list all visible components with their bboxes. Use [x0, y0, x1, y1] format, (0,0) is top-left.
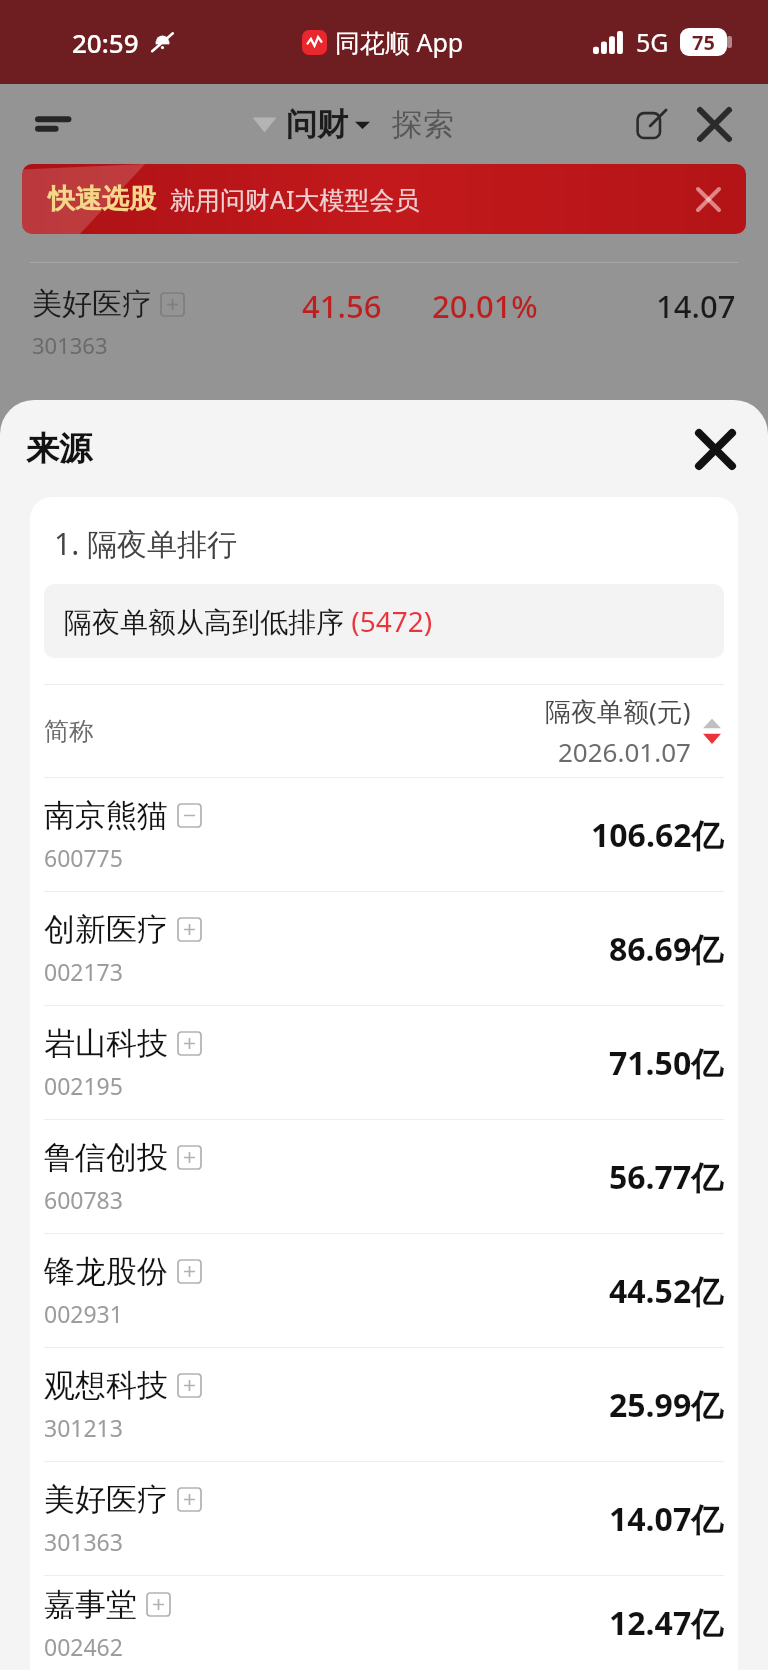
button[interactable]: Edit: [628, 100, 676, 148]
staticText: 同花顺 App: [335, 25, 464, 59]
button[interactable]: 隔夜单额从高到低排序 (5472): [44, 584, 724, 658]
staticText: 002931: [44, 1298, 123, 1329]
staticText: 南京熊猫: [44, 796, 168, 835]
staticText: 观想科技: [44, 1366, 168, 1405]
staticText: 1. 隔夜单排行: [54, 523, 237, 564]
button[interactable]: 探索: [392, 105, 454, 144]
staticText: 问财: [286, 105, 348, 144]
staticText: 25.99亿: [609, 1383, 724, 1427]
staticText: 美好医疗: [44, 1480, 168, 1519]
button[interactable]: 创新医疗: [30, 892, 738, 1005]
staticText: 5G: [636, 25, 669, 59]
button[interactable]: 锋龙股份: [30, 1234, 738, 1347]
staticText: 嘉事堂: [44, 1585, 137, 1624]
button[interactable]: Close: [690, 100, 738, 148]
staticText: 简称: [44, 716, 94, 747]
button[interactable]: Dismiss: [690, 181, 726, 217]
staticText: 002173: [44, 956, 123, 987]
button[interactable]: 南京熊猫: [30, 778, 738, 891]
staticText: 岩山科技: [44, 1024, 168, 1063]
staticText: 鲁信创投: [44, 1138, 168, 1177]
staticText: 20:59: [72, 25, 139, 60]
staticText: 14.07: [656, 285, 736, 327]
staticText: 2026.01.07: [558, 734, 691, 769]
staticText: 锋龙股份: [44, 1252, 168, 1291]
button[interactable]: 问财: [286, 105, 370, 144]
staticText: 14.07亿: [609, 1497, 724, 1541]
staticText: 隔夜单额从高到低排序 (5472): [64, 602, 433, 640]
staticText: 快速选股: [48, 182, 156, 216]
staticText: 44.52亿: [609, 1269, 724, 1313]
button[interactable]: Close sheet: [686, 420, 744, 478]
staticText: 002462: [44, 1631, 123, 1662]
staticText: 301363: [44, 1526, 123, 1557]
staticText: 41.56: [302, 285, 382, 327]
staticText: 86.69亿: [609, 927, 724, 971]
button[interactable]: 快速选股: [22, 164, 746, 234]
staticText: 71.50亿: [609, 1041, 724, 1085]
button[interactable]: Sort: [700, 709, 724, 753]
staticText: 600775: [44, 842, 123, 873]
staticText: 12.47亿: [609, 1601, 724, 1645]
staticText: 隔夜单额(元): [545, 693, 691, 729]
staticText: 美好医疗: [32, 285, 152, 323]
button[interactable]: 鲁信创投: [30, 1120, 738, 1233]
staticText: 301363: [32, 330, 108, 360]
button[interactable]: Menu: [30, 100, 78, 148]
staticText: 20.01%: [432, 285, 538, 327]
button[interactable]: 嘉事堂: [30, 1576, 738, 1670]
staticText: 301213: [44, 1412, 123, 1443]
staticText: 探索: [392, 105, 454, 144]
button[interactable]: 岩山科技: [30, 1006, 738, 1119]
staticText: 就用问财AI大模型会员: [170, 182, 420, 216]
staticText: 600783: [44, 1184, 123, 1215]
staticText: 创新医疗: [44, 910, 168, 949]
staticText: 75: [692, 29, 715, 56]
staticText: 56.77亿: [609, 1155, 724, 1199]
staticText: 106.62亿: [591, 813, 724, 857]
button[interactable]: 美好医疗: [30, 1462, 738, 1575]
button[interactable]: 观想科技: [30, 1348, 738, 1461]
staticText: 来源: [26, 428, 92, 470]
staticText: 002195: [44, 1070, 123, 1101]
